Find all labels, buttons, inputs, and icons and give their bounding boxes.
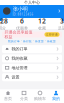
staticText: 首页 — [4, 96, 12, 101]
staticText: 立即开通 — [46, 33, 58, 36]
staticText: 我的 — [52, 96, 60, 101]
button[interactable]: 我的 — [48, 89, 64, 102]
staticText: ID: 88123456 — [12, 13, 33, 16]
button[interactable]: 购物车 — [32, 89, 48, 102]
staticText: 我的收藏 — [11, 56, 27, 61]
staticText: 地址管理 — [11, 65, 27, 70]
staticText: 张小明 — [12, 6, 27, 12]
button[interactable]: 我的订单 — [2, 45, 62, 53]
button[interactable]: 开通会员享超值权益 — [0, 31, 64, 37]
button[interactable]: 首页 — [0, 89, 16, 102]
button[interactable]: 3 — [56, 16, 64, 31]
staticText: 128 — [0, 16, 8, 25]
staticText: 积分 — [0, 26, 6, 31]
staticText: 开通会员享超值权益 — [4, 30, 32, 39]
staticText: 设置 — [11, 75, 19, 80]
staticText: 3 — [60, 16, 64, 25]
staticText: 足迹 — [58, 26, 64, 31]
button[interactable]: 128 — [0, 16, 8, 31]
staticText: 我的订单 · 待付款 · 待发货 · 待收货 — [8, 39, 56, 43]
staticText: 分类 — [20, 96, 28, 101]
staticText: 收藏 — [38, 26, 46, 31]
button[interactable]: 地址管理 — [2, 64, 62, 72]
staticText: 6 — [20, 16, 24, 25]
button[interactable]: 设置 — [2, 73, 62, 81]
button[interactable]: 6 — [16, 16, 28, 31]
button[interactable]: 我的收藏 — [2, 54, 62, 62]
button[interactable]: 分类 — [16, 89, 32, 102]
staticText: 我的订单 — [11, 47, 27, 51]
staticText: 个人中心 — [24, 0, 40, 5]
staticText: 购物车 — [34, 96, 46, 101]
staticText: 12 — [38, 16, 46, 25]
staticText: 优惠券 — [16, 26, 28, 31]
button[interactable]: 张小明 — [0, 5, 64, 17]
button[interactable]: 12 — [36, 16, 48, 31]
